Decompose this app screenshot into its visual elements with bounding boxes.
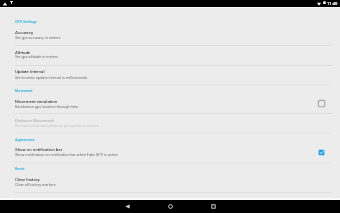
button[interactable]: Update Interval xyxy=(9,66,332,84)
button[interactable]: Movement simulation xyxy=(9,95,332,113)
staticText: Movement xyxy=(15,89,33,93)
button[interactable]: Altitude xyxy=(9,46,332,66)
staticText: Appearance xyxy=(15,138,35,142)
button[interactable]: Clear history xyxy=(9,173,332,192)
staticText: Reset xyxy=(15,167,25,171)
button[interactable]: Accuracy xyxy=(9,26,332,45)
staticText: Clear all history markers xyxy=(15,182,56,186)
staticText: Movement simulation xyxy=(15,99,58,104)
staticText: Show notification on notification bar wh… xyxy=(15,152,118,156)
button[interactable]: Home xyxy=(161,200,179,213)
button[interactable]: Recent apps xyxy=(204,200,222,213)
staticText: Show on notification bar xyxy=(15,147,63,152)
other: Option enabled xyxy=(316,147,326,157)
staticText: 11:40 xyxy=(327,1,338,6)
staticText: Distance Movement xyxy=(15,118,54,123)
staticText: Clear history xyxy=(15,177,40,182)
button[interactable]: Distance Movement xyxy=(9,114,332,133)
staticText: Altitude xyxy=(15,50,31,55)
staticText: GPS Settings xyxy=(15,20,37,24)
staticText: Set location update interval in millisec… xyxy=(15,75,88,79)
staticText: Set gps altitude in meters xyxy=(15,54,59,58)
button[interactable]: Back xyxy=(118,200,136,213)
staticText: Accuracy xyxy=(15,30,34,35)
staticText: Set gps accuracy in meters xyxy=(15,35,61,39)
staticText: Randomize gps location through time xyxy=(15,104,79,108)
staticText: Update Interval xyxy=(15,69,45,74)
button[interactable]: Show on notification bar xyxy=(9,143,332,162)
other: Option disabled xyxy=(316,98,326,108)
staticText: Set max movement distance per update in … xyxy=(15,123,99,127)
